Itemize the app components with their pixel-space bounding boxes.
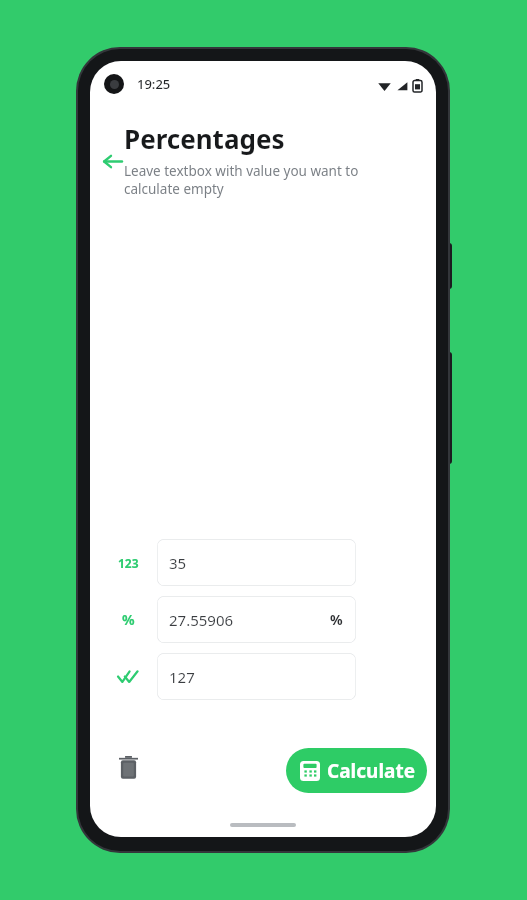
- button[interactable]: Calculate: [286, 748, 427, 793]
- staticText: 35: [169, 553, 187, 573]
- staticText: 123: [118, 555, 139, 571]
- staticText: Calculate: [327, 758, 416, 784]
- button[interactable]: Clear: [106, 745, 150, 789]
- button[interactable]: Back: [94, 143, 130, 179]
- staticText: Percentages: [124, 121, 285, 156]
- staticText: 19:25: [137, 75, 171, 93]
- button[interactable]: 27.55906: [157, 596, 356, 643]
- staticText: 127: [169, 667, 195, 687]
- staticText: %: [122, 610, 135, 629]
- staticText: Leave textbox with value you want to cal…: [124, 162, 359, 198]
- staticText: 27.55906: [169, 610, 234, 630]
- button[interactable]: 127: [157, 653, 356, 700]
- staticText: %: [330, 610, 343, 629]
- button[interactable]: 35: [157, 539, 356, 586]
